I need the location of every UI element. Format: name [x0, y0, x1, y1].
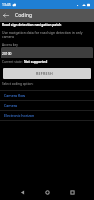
button[interactable]: Home — [35, 184, 60, 200]
staticText: Coding — [15, 12, 33, 19]
button[interactable]: 20100 — [1, 47, 93, 58]
button[interactable]: Back — [9, 184, 35, 200]
button[interactable]: Navigate up — [0, 9, 12, 22]
staticText: Camera flow — [4, 93, 26, 98]
staticText: Use navigation data for road sign detect… — [2, 30, 93, 39]
staticText: Electronic horizon — [4, 113, 35, 118]
button[interactable]: Camera — [0, 101, 94, 110]
staticText: Current state: — [2, 60, 24, 64]
button[interactable]: REFRESH — [3, 68, 91, 79]
staticText: Camera — [4, 103, 18, 108]
staticText: Access key — [2, 43, 18, 47]
staticText: Select coding option: — [2, 82, 34, 86]
staticText: Road sign detection navigation patch — [2, 23, 62, 27]
staticText: 20100 — [2, 51, 12, 55]
staticText: 13:45 — [2, 2, 11, 7]
button[interactable]: Recent apps — [60, 184, 85, 200]
staticText: REFRESH — [36, 71, 53, 76]
staticText: Not supported — [24, 60, 48, 64]
button[interactable]: Electronic horizon — [0, 111, 94, 120]
button[interactable]: Camera flow — [0, 91, 94, 100]
